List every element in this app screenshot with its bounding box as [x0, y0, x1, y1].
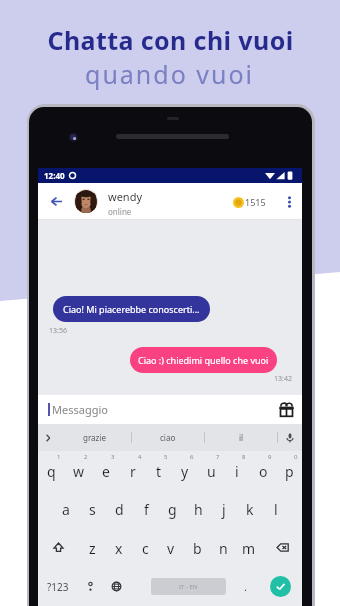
staticText: z [89, 539, 96, 558]
staticText: i [235, 462, 239, 481]
staticText: . [244, 579, 247, 594]
button[interactable]: More options [280, 193, 298, 211]
button[interactable]: 2 [65, 451, 92, 489]
staticText: p [285, 462, 294, 481]
staticText: 1515 [245, 196, 266, 208]
staticText: il [239, 432, 244, 443]
button[interactable]: 7 [198, 451, 224, 489]
staticText: g [168, 500, 177, 519]
button[interactable]: 5 [146, 451, 172, 489]
staticText: 3 [111, 453, 115, 461]
staticText: 7 [216, 453, 220, 461]
button[interactable]: d [106, 489, 133, 528]
staticText: k [246, 500, 254, 519]
button[interactable]: 4 [119, 451, 146, 489]
staticText: 4 [138, 453, 142, 461]
staticText: f [144, 500, 149, 519]
staticText: wendy [108, 189, 143, 204]
button[interactable]: . [232, 567, 258, 606]
button[interactable]: il [205, 424, 277, 451]
button[interactable]: 8 [224, 451, 250, 489]
staticText: IT - EN [179, 583, 198, 591]
staticText: q [47, 462, 56, 481]
button[interactable]: Comma [77, 567, 103, 606]
staticText: j [222, 500, 226, 519]
button[interactable]: x [106, 528, 132, 567]
staticText: ?123 [47, 580, 69, 594]
button[interactable]: z [79, 528, 106, 567]
button[interactable]: 6 [172, 451, 198, 489]
button[interactable]: Backspace [262, 528, 302, 567]
button[interactable]: IT - EN [151, 578, 226, 595]
staticText: 6 [190, 453, 194, 461]
staticText: 0 [294, 453, 298, 461]
staticText: d [115, 500, 124, 519]
button[interactable]: s [79, 489, 106, 528]
staticText: 5 [164, 453, 168, 461]
staticText: 8 [242, 453, 246, 461]
staticText: Messaggio [52, 402, 108, 417]
staticText: w [73, 462, 85, 481]
staticText: Ciao :) chiedimi quello che vuoi [138, 354, 269, 366]
staticText: s [89, 500, 96, 519]
staticText: 13:56 [49, 326, 67, 336]
button[interactable]: 1515 [233, 196, 266, 208]
staticText: h [194, 500, 203, 519]
button[interactable]: ?123 [38, 567, 77, 606]
button[interactable]: Change language [103, 567, 129, 606]
staticText: Chatta con chi vuoi [47, 23, 294, 57]
staticText: r [130, 462, 136, 481]
staticText: b [193, 539, 202, 558]
button[interactable]: j [211, 489, 237, 528]
staticText: quando vuoi [85, 57, 255, 91]
button[interactable]: grazie [58, 424, 131, 451]
button[interactable]: Send gift [277, 401, 295, 419]
button[interactable]: Ciao :) chiedimi quello che vuoi [130, 347, 277, 373]
staticText: l [274, 500, 278, 519]
button[interactable]: a [52, 489, 79, 528]
button[interactable]: v [158, 528, 184, 567]
staticText: 1 [57, 453, 61, 461]
button[interactable]: l [263, 489, 289, 528]
button[interactable]: More suggestions [38, 424, 58, 451]
button[interactable]: Ciao! Mi piacerebbe conoscerti... [53, 296, 210, 322]
button[interactable]: g [159, 489, 185, 528]
button[interactable]: c [132, 528, 158, 567]
staticText: ciao [160, 432, 176, 443]
staticText: online [108, 206, 132, 217]
staticText: Ciao! Mi piacerebbe conoscerti... [63, 303, 200, 315]
button[interactable]: ciao [132, 424, 204, 451]
button[interactable]: Voice input [278, 424, 302, 451]
staticText: t [156, 462, 162, 481]
button[interactable]: h [185, 489, 211, 528]
button[interactable]: b [184, 528, 210, 567]
staticText: 2 [84, 453, 88, 461]
staticText: 12:40 [44, 170, 65, 181]
staticText: v [167, 539, 175, 558]
button[interactable]: Shift [38, 528, 79, 567]
staticText: e [102, 462, 110, 481]
button[interactable]: k [237, 489, 263, 528]
button[interactable]: 9 [250, 451, 276, 489]
staticText: 9 [268, 453, 272, 461]
button[interactable]: Send [258, 567, 302, 606]
button[interactable]: f [133, 489, 159, 528]
staticText: m [242, 539, 256, 558]
staticText: n [219, 539, 228, 558]
staticText: a [62, 500, 70, 519]
button[interactable]: 1 [38, 451, 65, 489]
button[interactable]: m [236, 528, 262, 567]
staticText: o [259, 462, 268, 481]
staticText: u [207, 462, 216, 481]
button[interactable]: 3 [92, 451, 119, 489]
button[interactable]: n [210, 528, 236, 567]
button[interactable]: 0 [276, 451, 302, 489]
staticText: grazie [83, 432, 106, 443]
staticText: c [142, 539, 149, 558]
button[interactable]: Back [46, 183, 66, 220]
staticText: 13:42 [274, 374, 292, 384]
staticText: x [115, 539, 123, 558]
staticText: y [181, 462, 189, 481]
